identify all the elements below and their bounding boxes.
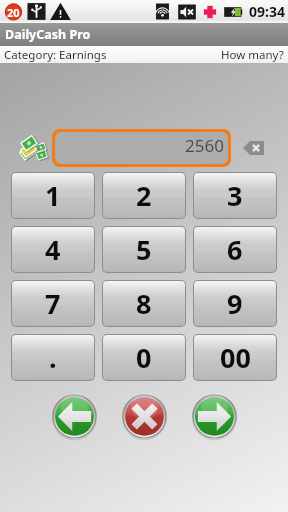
staticText: 00 — [220, 339, 251, 376]
button[interactable]: Backspace — [236, 133, 270, 163]
staticText: 5 — [136, 231, 152, 268]
staticText: DailyCash Pro — [5, 26, 91, 43]
button[interactable]: 00 — [194, 335, 276, 380]
button[interactable]: 5 — [103, 227, 185, 272]
button[interactable]: Cancel — [122, 394, 167, 439]
staticText: Category: Earnings — [4, 47, 107, 63]
button[interactable]: . — [12, 335, 94, 380]
button[interactable]: 1 — [12, 173, 94, 218]
button[interactable]: 0 — [103, 335, 185, 380]
staticText: 7 — [45, 285, 61, 322]
button[interactable]: 6 — [194, 227, 276, 272]
button[interactable]: 3 — [194, 173, 276, 218]
staticText: 09:34 — [249, 2, 285, 21]
staticText: 8 — [136, 285, 152, 322]
staticText: 9 — [227, 285, 243, 322]
staticText: 4 — [45, 231, 61, 268]
staticText: 3 — [227, 177, 243, 214]
staticText: 2 — [136, 177, 152, 214]
staticText: 20 — [7, 5, 20, 20]
button[interactable]: 2560 — [55, 132, 228, 164]
button[interactable]: Back — [52, 394, 97, 439]
staticText: 1 — [45, 177, 61, 214]
button[interactable]: 4 — [12, 227, 94, 272]
staticText: . — [49, 339, 57, 376]
staticText: 2560 — [185, 134, 224, 157]
button[interactable]: 8 — [103, 281, 185, 326]
button[interactable]: 2 — [103, 173, 185, 218]
button[interactable]: 9 — [194, 281, 276, 326]
staticText: 0 — [136, 339, 152, 376]
button[interactable]: 7 — [12, 281, 94, 326]
staticText: How many? — [221, 47, 284, 63]
button[interactable]: Next — [192, 394, 237, 439]
staticText: 6 — [227, 231, 243, 268]
